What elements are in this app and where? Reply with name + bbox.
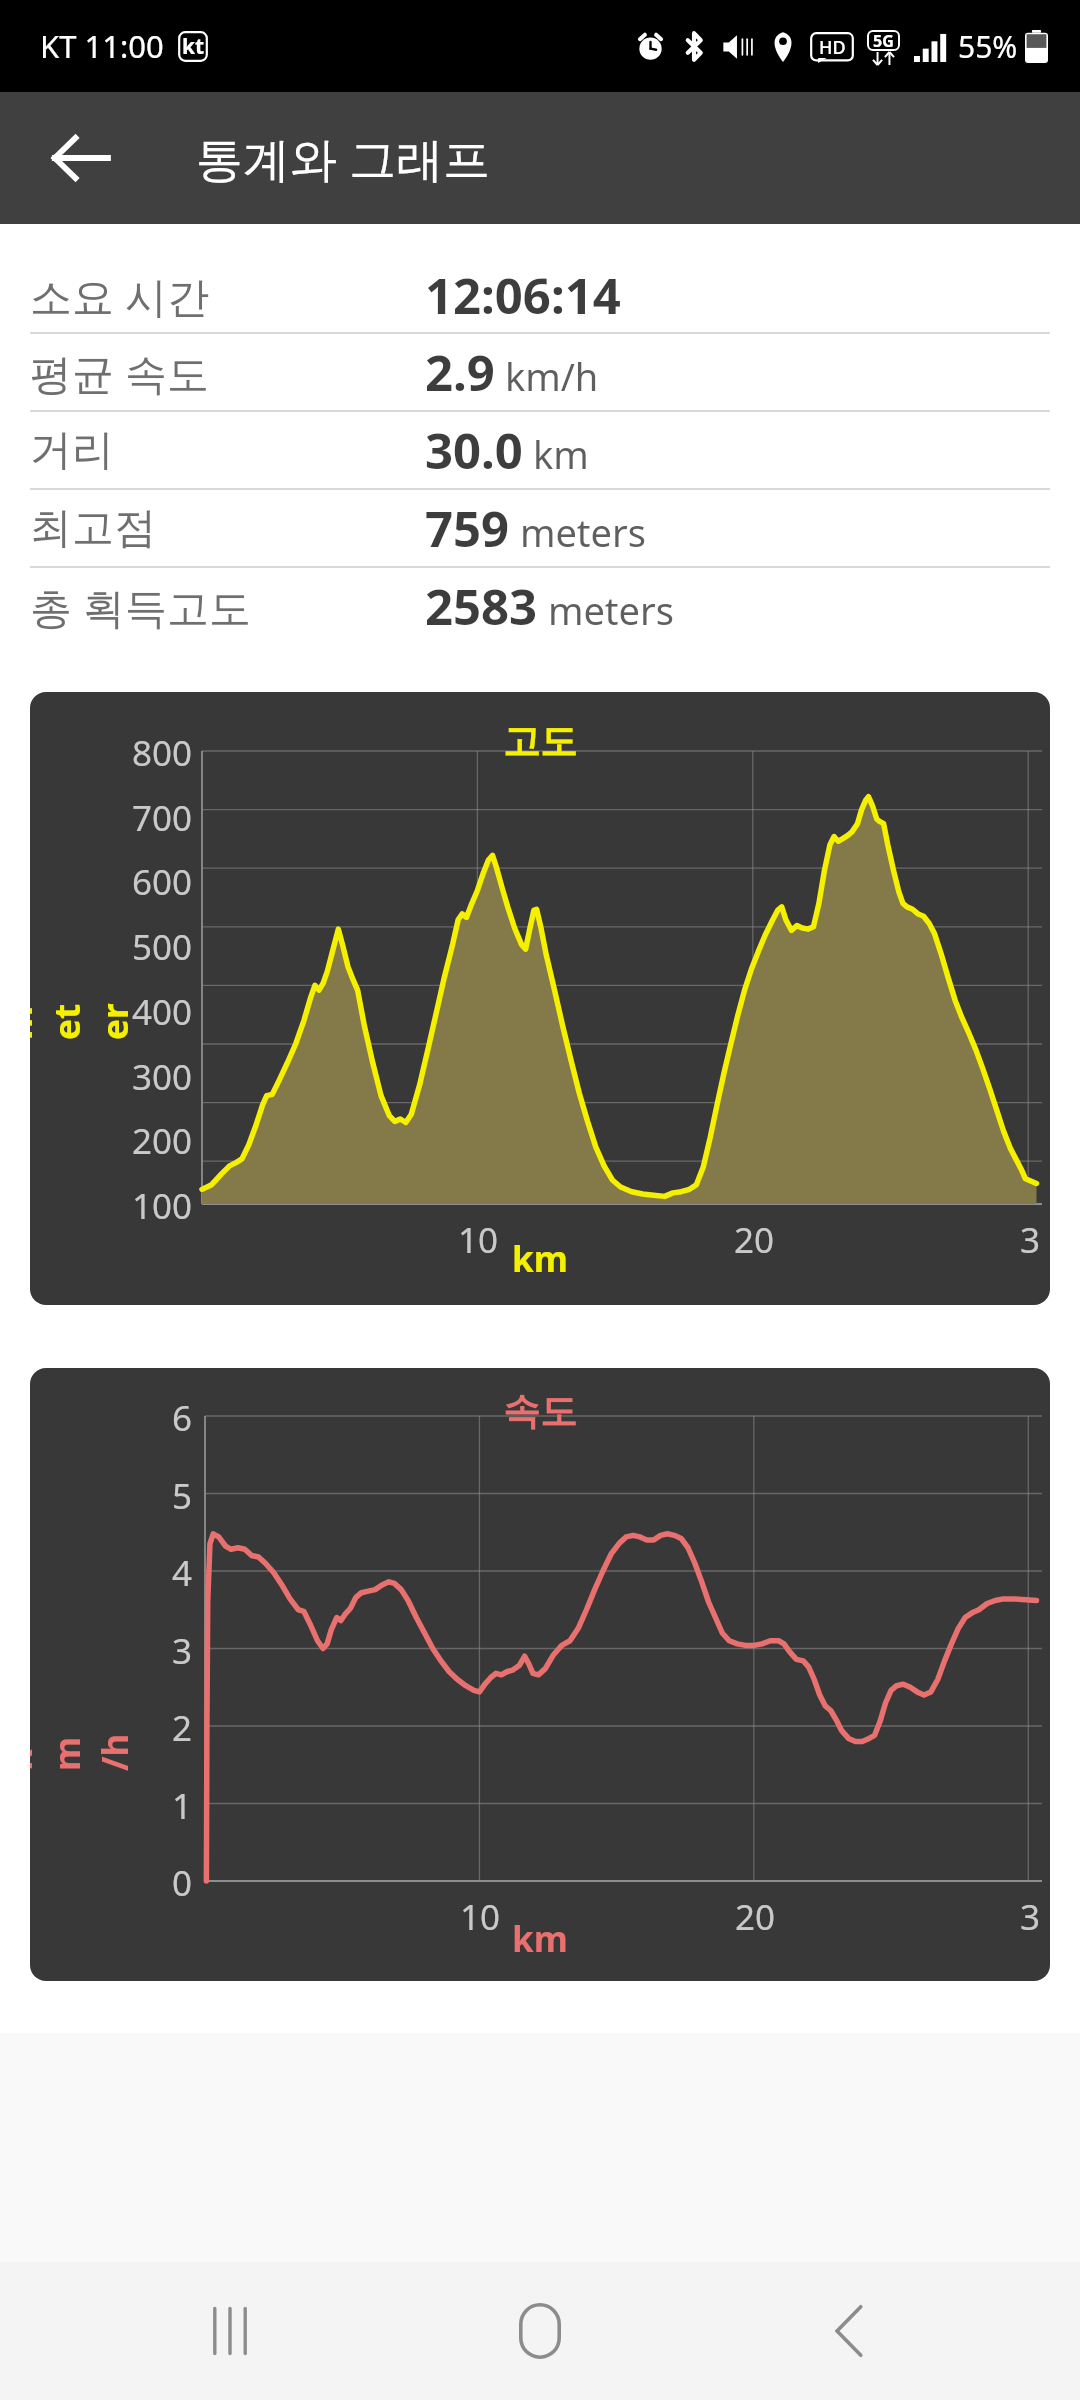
staticText: 0 (130, 1859, 192, 1907)
staticText: 1 (130, 1782, 192, 1830)
staticText: 2.9 (425, 339, 495, 406)
staticText: 고도 (503, 718, 577, 765)
staticText: 소요 시간 (30, 267, 425, 324)
staticText: 6 (130, 1394, 192, 1442)
staticText: meter (30, 994, 139, 1040)
button[interactable]: Recent apps (150, 2262, 310, 2400)
staticText: 500 (100, 923, 192, 971)
staticText: 55% (958, 26, 1018, 67)
staticText: 800 (100, 729, 192, 777)
staticText: 20 (721, 1216, 787, 1264)
staticText: 4 (130, 1549, 192, 1597)
staticText: KT 11:00 (40, 25, 164, 67)
staticText: 30.0 (425, 417, 523, 484)
button[interactable]: Elevation chart (30, 692, 1050, 1305)
staticText: 12:06:14 (425, 262, 621, 329)
staticText: 거리 (30, 424, 425, 477)
staticText: km (523, 428, 589, 480)
button[interactable]: 최고점 (0, 490, 1080, 566)
staticText: km (512, 1915, 568, 1963)
staticText: 700 (100, 794, 192, 842)
button[interactable]: Home (460, 2262, 620, 2400)
button[interactable]: 평균 속도 (0, 334, 1080, 410)
button[interactable]: 거리 (0, 412, 1080, 488)
button[interactable]: 소요 시간 (0, 258, 1080, 332)
staticText: 10 (445, 1216, 511, 1264)
staticText: HD (819, 35, 846, 60)
staticText: 200 (100, 1117, 192, 1165)
button[interactable]: Back (28, 106, 132, 210)
staticText: 5G (873, 30, 894, 52)
staticText: meters (538, 584, 674, 636)
staticText: 400 (100, 988, 192, 1036)
staticText: 총 획득고도 (30, 578, 425, 635)
staticText: 최고점 (30, 502, 425, 555)
staticText: 5 (130, 1472, 192, 1520)
staticText: 3 (1020, 1893, 1041, 1941)
staticText: 평균 속도 (30, 344, 425, 401)
staticText: 속도 (503, 1388, 577, 1435)
staticText: 3 (1020, 1216, 1041, 1264)
staticText: 2 (130, 1704, 192, 1752)
staticText: km (512, 1235, 568, 1283)
button[interactable]: Speed chart (30, 1368, 1050, 1981)
staticText: km/h (495, 350, 599, 402)
staticText: 300 (100, 1053, 192, 1101)
staticText: 20 (722, 1893, 788, 1941)
staticText: 통계와 그래프 (196, 126, 491, 190)
staticText: 10 (447, 1893, 513, 1941)
button[interactable]: 총 획득고도 (0, 568, 1080, 644)
staticText: km/h (30, 1725, 139, 1771)
staticText: meters (510, 506, 646, 558)
staticText: 100 (100, 1182, 192, 1230)
staticText: 759 (425, 495, 510, 562)
staticText: kt (182, 32, 205, 61)
staticText: 3 (130, 1627, 192, 1675)
button[interactable]: Back (770, 2262, 930, 2400)
staticText: 600 (100, 858, 192, 906)
staticText: 2583 (425, 573, 538, 640)
